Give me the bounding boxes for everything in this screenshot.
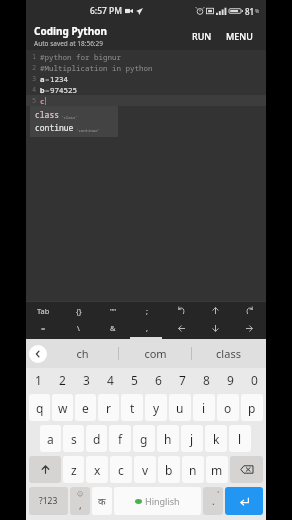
staticText: e [82, 400, 89, 416]
button[interactable]: n [182, 456, 204, 483]
button[interactable]: Undo [164, 302, 198, 319]
button[interactable]: Redo [232, 302, 266, 319]
button[interactable]: Up [198, 302, 232, 319]
button[interactable]: RUN [187, 26, 217, 46]
button[interactable]: ch [47, 339, 118, 368]
staticText: MENU [226, 30, 253, 42]
button[interactable]: l [229, 425, 251, 452]
staticText: 4 [32, 85, 37, 95]
button[interactable]: 2 [50, 368, 74, 392]
button[interactable]: o [217, 394, 239, 421]
button[interactable]: Space, Hinglish [114, 487, 201, 515]
button[interactable]: f [109, 425, 131, 452]
button[interactable]: Down [198, 319, 232, 337]
staticText: t [130, 400, 135, 416]
button[interactable]: , [130, 319, 164, 337]
button[interactable]: 3 [74, 368, 98, 392]
staticText: {} [76, 306, 82, 316]
button[interactable]: s [63, 425, 84, 452]
button[interactable]: c [110, 456, 132, 483]
button[interactable]: Emoji and comma [70, 487, 90, 515]
button[interactable]: i [193, 394, 215, 421]
button[interactable]: 5 [122, 368, 146, 392]
button[interactable]: x [86, 456, 108, 483]
button[interactable]: \ [61, 319, 96, 337]
staticText: n [189, 462, 197, 478]
staticText: ch [76, 346, 89, 361]
staticText: , [146, 323, 149, 333]
other: Undo [177, 306, 186, 315]
staticText: v [142, 462, 149, 478]
button[interactable]: m [206, 456, 228, 483]
staticText: Auto saved at 18:56:29 [34, 39, 104, 48]
button[interactable]: g [133, 425, 155, 452]
button[interactable]: 8 [194, 368, 218, 392]
button[interactable]: Tab [26, 302, 61, 319]
button[interactable]: 1 [26, 368, 50, 392]
staticText: 1 [32, 52, 37, 62]
staticText: ☺ [77, 490, 84, 497]
button[interactable]: Period [203, 487, 223, 515]
staticText: g [140, 431, 148, 447]
button[interactable]: Previous suggestions [29, 345, 47, 363]
staticText: l [238, 431, 242, 447]
button[interactable]: 6 [146, 368, 170, 392]
other: Up [211, 306, 220, 315]
button[interactable]: q [29, 394, 50, 421]
staticText: Tab [37, 306, 50, 316]
button[interactable]: j [181, 425, 203, 452]
button[interactable]: ?123 [29, 487, 68, 515]
staticText: 6:57 PM [90, 5, 123, 17]
button[interactable]: 7 [170, 368, 194, 392]
button[interactable]: 4 [98, 368, 122, 392]
button[interactable]: k [205, 425, 227, 452]
button[interactable]: r [98, 394, 119, 421]
button[interactable]: b [158, 456, 180, 483]
staticText: m [211, 462, 223, 478]
button[interactable]: d [86, 425, 107, 452]
button[interactable]: क [92, 487, 112, 515]
staticText: 'class' [61, 115, 78, 120]
staticText: 2 [32, 63, 37, 73]
staticText: 4 [107, 372, 114, 388]
other: Left [177, 324, 186, 333]
button[interactable]: MENU [221, 26, 258, 46]
button[interactable]: {} [61, 302, 96, 319]
button[interactable]: com [119, 339, 191, 368]
button[interactable]: Right [232, 319, 266, 337]
button[interactable]: w [52, 394, 73, 421]
button[interactable]: Enter [225, 487, 263, 515]
staticText: 7 [179, 372, 186, 388]
staticText: a [40, 74, 45, 84]
button[interactable]: 0 [242, 368, 266, 392]
button[interactable]: ; [130, 302, 164, 319]
staticText: 1 [35, 372, 42, 388]
button[interactable]: & [96, 319, 130, 337]
button[interactable]: u [169, 394, 191, 421]
button[interactable]: = [26, 319, 61, 337]
button[interactable]: "" [96, 302, 130, 319]
button[interactable]: a [40, 425, 61, 452]
staticText: "" [110, 306, 117, 316]
button[interactable]: z [63, 456, 84, 483]
staticText: class [216, 346, 241, 361]
button[interactable]: continue [35, 122, 118, 133]
staticText: q [36, 400, 44, 416]
button[interactable]: y [145, 394, 167, 421]
button[interactable]: p [241, 394, 263, 421]
button[interactable]: class [192, 339, 264, 368]
button[interactable]: Backspace [230, 456, 263, 483]
staticText: f [118, 431, 123, 447]
button[interactable]: Left [164, 319, 198, 337]
staticText: j [190, 431, 194, 447]
button[interactable]: v [134, 456, 156, 483]
button[interactable]: h [157, 425, 179, 452]
staticText: b [165, 462, 173, 478]
staticText: z [71, 462, 77, 478]
staticText: class [35, 109, 59, 120]
button[interactable]: Shift [29, 456, 61, 483]
button[interactable]: t [121, 394, 143, 421]
button[interactable]: e [75, 394, 96, 421]
button[interactable]: 9 [218, 368, 242, 392]
button[interactable]: class [35, 109, 118, 120]
